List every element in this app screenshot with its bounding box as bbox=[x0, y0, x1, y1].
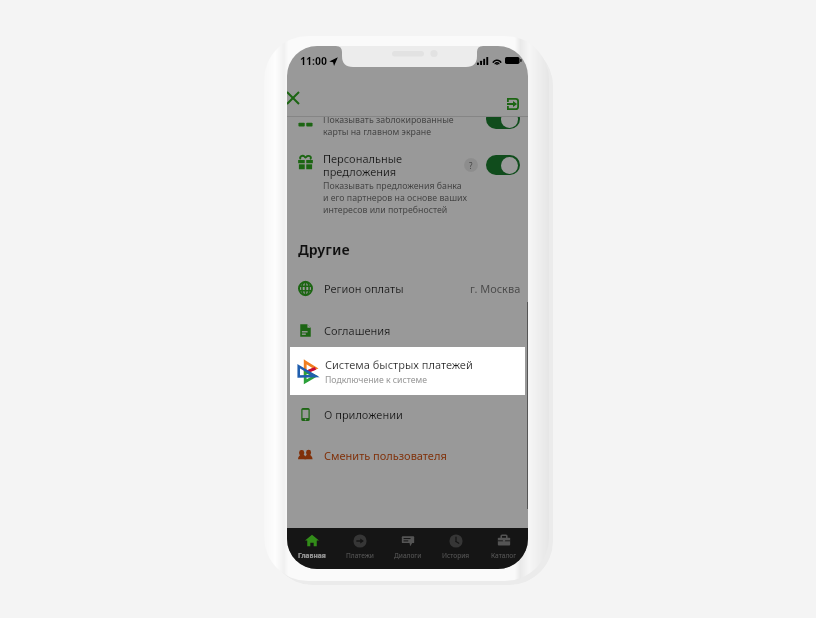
staticText: Платежи bbox=[346, 551, 374, 560]
button[interactable]: Диалоги bbox=[384, 528, 432, 569]
staticText: Показывать заблокированные bbox=[323, 117, 454, 126]
staticText: г. Москва bbox=[470, 281, 521, 296]
staticText: Персональные bbox=[323, 151, 403, 166]
button[interactable]: Toggle bbox=[486, 117, 520, 129]
button[interactable]: Главная bbox=[287, 528, 336, 569]
button[interactable]: Toggle bbox=[486, 155, 520, 175]
button[interactable]: Платежи bbox=[336, 528, 384, 569]
staticText: История bbox=[442, 551, 470, 560]
staticText: интересов или потребностей bbox=[323, 204, 448, 216]
staticText: О приложении bbox=[324, 407, 403, 422]
staticText: Система быстрых платежей bbox=[325, 357, 473, 372]
button[interactable]: История bbox=[432, 528, 480, 569]
staticText: 11:00 bbox=[300, 54, 327, 68]
staticText: ? bbox=[469, 160, 473, 171]
button[interactable]: Exit bbox=[501, 92, 525, 116]
staticText: Подключение к системе bbox=[325, 374, 427, 386]
button[interactable]: Close bbox=[287, 83, 308, 113]
staticText: Сменить пользователя bbox=[324, 448, 447, 463]
staticText: Регион оплаты bbox=[324, 281, 404, 296]
button[interactable]: Система быстрых платежей bbox=[290, 347, 525, 395]
staticText: Диалоги bbox=[394, 551, 422, 560]
staticText: Соглашения bbox=[324, 323, 391, 338]
button[interactable]: Сменить пользователя bbox=[287, 434, 528, 476]
staticText: карты на главном экране bbox=[323, 126, 432, 138]
staticText: Главная bbox=[298, 551, 326, 560]
staticText: Каталог bbox=[491, 551, 517, 560]
button[interactable]: Каталог bbox=[480, 528, 528, 569]
staticText: Показывать предложения банка bbox=[323, 180, 462, 192]
staticText: предложения bbox=[323, 164, 397, 179]
button[interactable]: О приложении bbox=[287, 393, 528, 435]
button[interactable]: Соглашения bbox=[287, 309, 528, 351]
button[interactable]: Регион оплаты bbox=[287, 267, 528, 309]
staticText: Другие bbox=[298, 240, 350, 259]
staticText: и его партнеров на основе ваших bbox=[323, 192, 468, 204]
button[interactable]: Help bbox=[464, 158, 478, 172]
